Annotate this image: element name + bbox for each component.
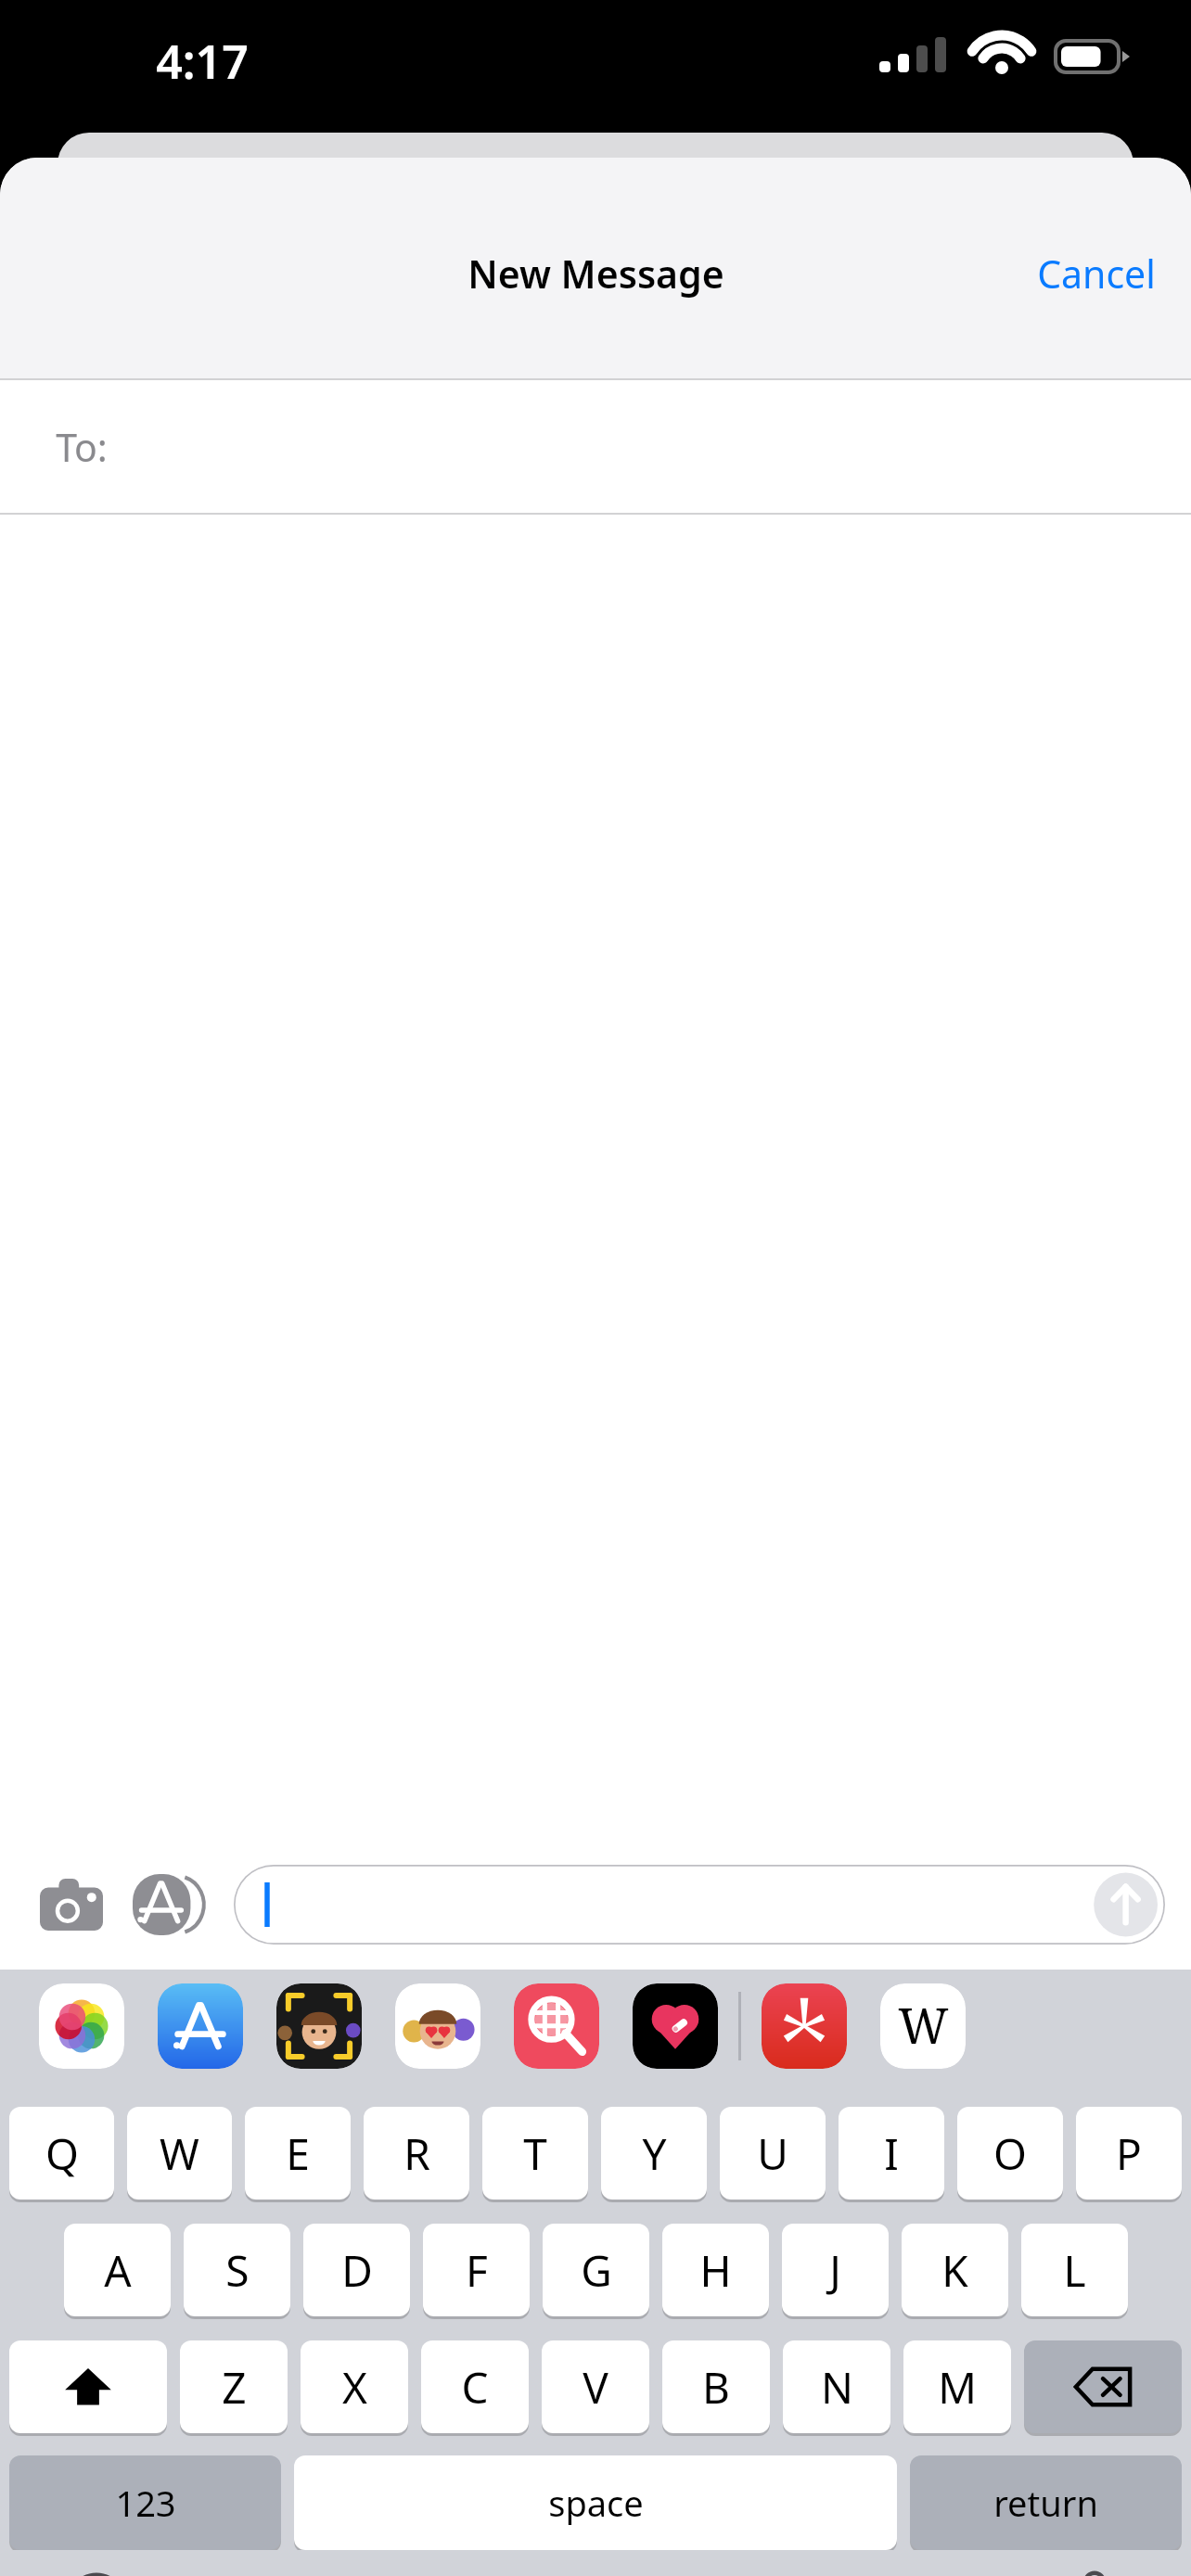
button[interactable]: A xyxy=(64,2224,171,2316)
staticText: Z xyxy=(222,2358,247,2417)
staticText: M xyxy=(938,2358,977,2417)
button[interactable]: Images xyxy=(514,1983,599,2069)
button[interactable]: Camera xyxy=(32,1865,111,1945)
button[interactable]: C xyxy=(421,2340,529,2433)
button[interactable]: Cancel xyxy=(1002,231,1191,316)
button[interactable]: Photos xyxy=(39,1983,124,2069)
button[interactable]: G xyxy=(543,2224,649,2316)
button[interactable]: Memoji xyxy=(276,1983,362,2069)
staticText: B xyxy=(702,2358,730,2417)
button[interactable]: Numbers xyxy=(9,2455,281,2550)
staticText: W xyxy=(898,1992,949,2058)
button[interactable]: U xyxy=(720,2107,826,2200)
staticText: X xyxy=(342,2358,367,2417)
staticText: U xyxy=(757,2124,788,2183)
button[interactable]: N xyxy=(783,2340,890,2433)
button[interactable]: K xyxy=(902,2224,1008,2316)
button[interactable]: Z xyxy=(180,2340,288,2433)
staticText: G xyxy=(581,2241,612,2300)
staticText: L xyxy=(1063,2241,1086,2300)
button[interactable]: M xyxy=(903,2340,1011,2433)
button[interactable]: Apps xyxy=(130,1865,210,1945)
button[interactable]: X xyxy=(301,2340,408,2433)
button[interactable]: Emoji xyxy=(54,2559,139,2576)
button[interactable]: Y xyxy=(601,2107,707,2200)
staticText: Y xyxy=(642,2124,667,2183)
button[interactable]: W xyxy=(127,2107,232,2200)
button[interactable]: J xyxy=(782,2224,889,2316)
staticText: To: xyxy=(56,421,108,473)
button[interactable]: App Store xyxy=(158,1983,243,2069)
button[interactable]: Yelp xyxy=(762,1983,847,2069)
button[interactable]: Shift xyxy=(9,2340,167,2433)
button[interactable]: Message field xyxy=(234,1865,1165,1945)
button[interactable]: O xyxy=(957,2107,1063,2200)
staticText: S xyxy=(225,2241,250,2300)
button[interactable]: Return xyxy=(910,2455,1182,2550)
staticText: T xyxy=(523,2124,547,2183)
button[interactable]: I xyxy=(839,2107,944,2200)
button[interactable]: E xyxy=(245,2107,351,2200)
button[interactable]: To: xyxy=(0,380,1191,513)
staticText: J xyxy=(829,2241,841,2300)
staticText: Q xyxy=(45,2124,79,2183)
staticText: D xyxy=(341,2241,373,2300)
staticText: 123 xyxy=(115,2479,176,2527)
staticText: New Message xyxy=(467,248,724,300)
staticText: W xyxy=(160,2124,199,2183)
button[interactable]: Memoji Stickers xyxy=(395,1983,480,2069)
button[interactable]: T xyxy=(482,2107,588,2200)
button[interactable]: Dictation xyxy=(1052,2559,1137,2576)
staticText: V xyxy=(583,2358,608,2417)
button[interactable]: H xyxy=(662,2224,769,2316)
staticText: Cancel xyxy=(1037,248,1156,300)
button[interactable]: Space xyxy=(294,2455,897,2550)
button[interactable]: Q xyxy=(9,2107,114,2200)
button[interactable]: D xyxy=(303,2224,410,2316)
button[interactable]: B xyxy=(662,2340,770,2433)
staticText: F xyxy=(466,2241,488,2300)
staticText: H xyxy=(699,2241,732,2300)
staticText: A xyxy=(104,2241,132,2300)
button[interactable]: F xyxy=(423,2224,530,2316)
staticText: O xyxy=(993,2124,1027,2183)
staticText: E xyxy=(286,2124,310,2183)
button[interactable]: R xyxy=(364,2107,469,2200)
staticText: P xyxy=(1116,2124,1142,2183)
staticText: return xyxy=(993,2479,1098,2527)
staticText: R xyxy=(403,2124,430,2183)
staticText: K xyxy=(941,2241,968,2300)
button[interactable]: S xyxy=(184,2224,290,2316)
button[interactable]: Backspace xyxy=(1024,2340,1182,2433)
staticText: 4:17 xyxy=(156,30,249,93)
button[interactable]: V xyxy=(542,2340,649,2433)
staticText: space xyxy=(548,2479,644,2527)
button[interactable]: Wikipedia xyxy=(880,1983,966,2069)
staticText: C xyxy=(461,2358,489,2417)
button[interactable]: L xyxy=(1021,2224,1128,2316)
staticText: N xyxy=(821,2358,853,2417)
staticText: I xyxy=(884,2124,899,2183)
button[interactable]: Fitness xyxy=(633,1983,718,2069)
button[interactable]: P xyxy=(1076,2107,1182,2200)
